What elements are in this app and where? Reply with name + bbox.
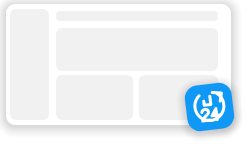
button[interactable]: 24 hour support xyxy=(182,78,237,136)
button[interactable] xyxy=(6,4,231,125)
